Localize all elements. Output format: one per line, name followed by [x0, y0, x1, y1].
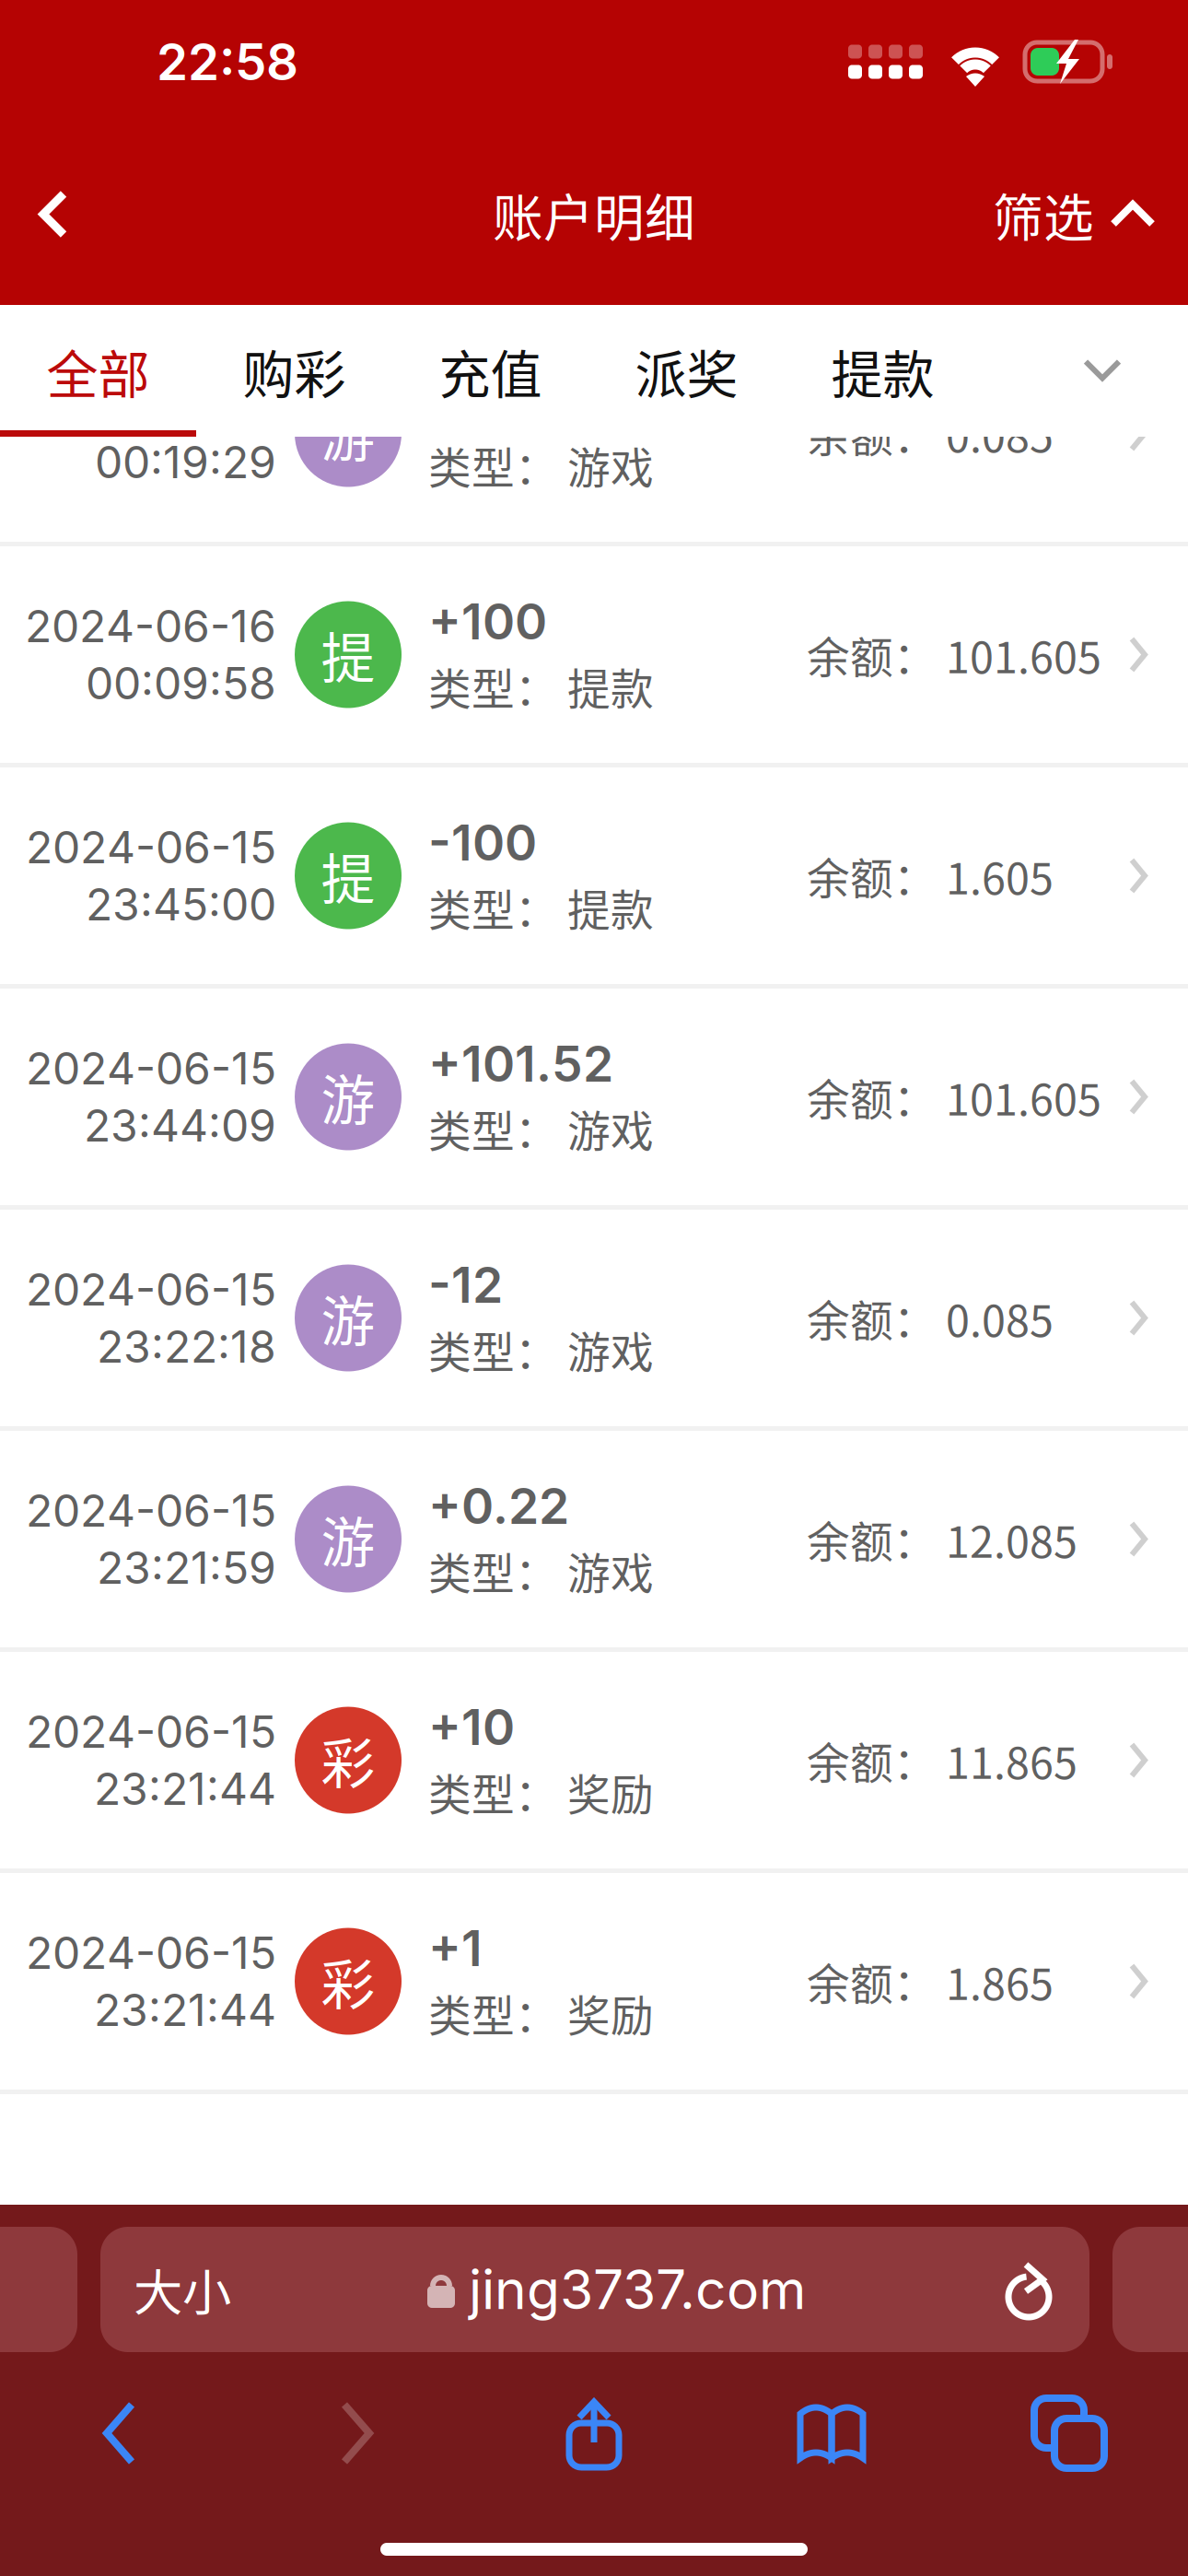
staticText: 2024-06-15 — [26, 1926, 276, 1979]
staticText: 00:19:29 — [95, 435, 276, 489]
staticText: 类型： 提款 — [428, 876, 654, 938]
staticText: 2024-06-15 — [26, 820, 276, 874]
button[interactable]: 购彩 — [196, 305, 392, 437]
staticText: 提 — [321, 615, 375, 694]
staticText: 23:22:18 — [97, 1320, 276, 1373]
staticText: 类型： 游戏 — [428, 434, 654, 496]
staticText: 余额： 0.085 — [807, 1287, 1054, 1349]
button[interactable]: 2024-06-15 — [0, 1431, 1188, 1647]
staticText: +1 — [428, 1919, 483, 1978]
staticText: 类型： 奖励 — [428, 1982, 654, 2044]
button[interactable]: More categories — [981, 305, 1188, 437]
button[interactable]: Tabs — [950, 2385, 1188, 2481]
staticText: jing3737.com — [469, 2257, 806, 2322]
button[interactable]: 2024-06-15 — [0, 767, 1188, 984]
staticText: 彩 — [321, 1942, 375, 2020]
button[interactable]: 2024-06-15 — [0, 1652, 1188, 1868]
staticText: 购彩 — [243, 334, 346, 408]
staticText: 23:45:00 — [86, 878, 276, 931]
staticText: 余额： 11.865 — [807, 1729, 1077, 1791]
button[interactable]: 派奖 — [588, 305, 785, 437]
staticText: 余额： 1.605 — [807, 845, 1054, 907]
staticText: 提款 — [831, 334, 934, 408]
button[interactable]: Forward — [238, 2385, 475, 2481]
staticText: 充值 — [439, 334, 542, 408]
staticText: 游 — [321, 1500, 375, 1578]
button[interactable]: 2024-06-15 — [0, 989, 1188, 1205]
staticText: 余额： 101.605 — [807, 623, 1101, 686]
staticText: 余额： 101.605 — [807, 1066, 1101, 1128]
staticText: 2024-06-15 — [26, 1263, 276, 1316]
button[interactable]: Back — [0, 147, 114, 281]
staticText: 类型： 奖励 — [428, 1761, 654, 1823]
staticText: 余额： 12.085 — [807, 1508, 1077, 1570]
staticText: +100 — [428, 592, 547, 651]
staticText: 彩 — [321, 1721, 375, 1799]
staticText: 类型： 游戏 — [428, 1318, 654, 1381]
staticText: 2024-06-15 — [26, 1484, 276, 1537]
button[interactable]: 全部 — [0, 305, 196, 437]
staticText: 余额： 0.085 — [807, 402, 1054, 465]
staticText: 游 — [321, 1279, 375, 1357]
button[interactable]: 2024-06-15 — [0, 1210, 1188, 1426]
staticText: +10 — [428, 1697, 515, 1757]
staticText: 大小 — [134, 2254, 231, 2325]
button[interactable]: 充值 — [392, 305, 588, 437]
staticText: 账户明细 — [493, 178, 695, 251]
staticText: 提 — [321, 837, 375, 915]
staticText: +0.22 — [428, 1476, 569, 1536]
staticText: 筛选 — [993, 178, 1094, 251]
button[interactable]: Share — [475, 2385, 713, 2481]
staticText: 游 — [321, 1058, 375, 1136]
staticText: 23:21:44 — [94, 1983, 276, 2037]
staticText: 派奖 — [635, 334, 738, 408]
staticText: 余额： 1.865 — [807, 1950, 1054, 2012]
button[interactable]: 2024-06-15 — [0, 1873, 1188, 2090]
staticText: 22:58 — [157, 31, 298, 92]
staticText: -0.5 — [428, 371, 530, 430]
staticText: 23:44:09 — [84, 1099, 276, 1152]
staticText: 游 — [321, 394, 375, 473]
staticText: 2024-06-16 — [25, 378, 276, 432]
button[interactable]: 大小 — [100, 2227, 1089, 2352]
button[interactable]: Bookmarks — [713, 2385, 950, 2481]
staticText: 23:21:59 — [97, 1541, 276, 1594]
button[interactable]: 2024-06-16 — [0, 325, 1188, 542]
button[interactable]: 提款 — [785, 305, 981, 437]
button[interactable]: 筛选 — [993, 147, 1188, 281]
staticText: 2024-06-15 — [26, 1041, 276, 1095]
staticText: -100 — [428, 813, 537, 872]
staticText: +101.52 — [428, 1034, 613, 1094]
staticText: 类型： 游戏 — [428, 1540, 654, 1602]
staticText: 2024-06-16 — [25, 599, 276, 653]
button[interactable]: 2024-06-16 — [0, 546, 1188, 763]
staticText: 2024-06-15 — [26, 1705, 276, 1758]
staticText: 类型： 游戏 — [428, 1097, 654, 1160]
button[interactable]: Back — [0, 2385, 238, 2481]
staticText: -12 — [428, 1255, 503, 1315]
staticText: 00:09:58 — [86, 656, 276, 710]
staticText: 23:21:44 — [94, 1762, 276, 1816]
staticText: 类型： 提款 — [428, 655, 654, 717]
staticText: 全部 — [47, 334, 150, 408]
